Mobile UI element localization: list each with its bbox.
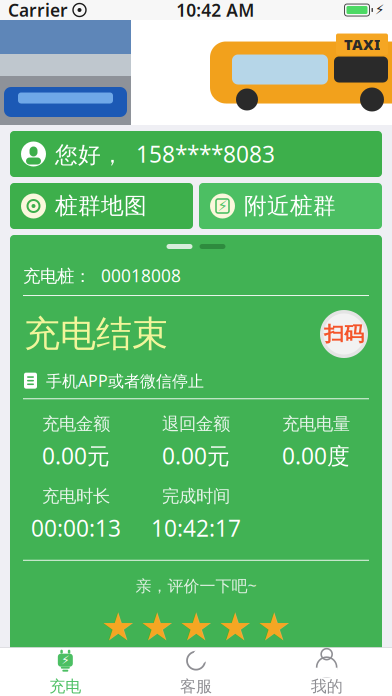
- staticText: ★: [139, 605, 174, 649]
- staticText: 桩群地图: [55, 192, 147, 220]
- staticText: 扫码: [324, 322, 364, 346]
- staticText: 充电金额: [42, 413, 110, 435]
- staticText: ⚡︎: [61, 653, 69, 667]
- staticText: 0.00度: [282, 441, 350, 471]
- staticText: 亲，评价一下吧~: [135, 575, 256, 596]
- staticText: 您好， 158****8083: [55, 139, 275, 169]
- button[interactable]: Rate: [139, 605, 174, 649]
- staticText: 00:00:13: [31, 513, 121, 543]
- button[interactable]: Rate: [100, 605, 135, 649]
- staticText: ★: [256, 605, 291, 649]
- button[interactable]: Rate: [217, 605, 252, 649]
- staticText: 0.00元: [42, 441, 110, 471]
- button[interactable]: 我的: [261, 648, 392, 696]
- staticText: ★: [178, 605, 213, 649]
- staticText: 充电结束: [24, 312, 168, 356]
- button[interactable]: 客服: [131, 648, 261, 696]
- staticText: 附近桩群: [244, 192, 336, 220]
- staticText: 我的: [311, 677, 343, 696]
- staticText: 手机APP或者微信停止: [46, 370, 204, 391]
- staticText: ⚡︎: [217, 198, 227, 214]
- button[interactable]: ⚡︎: [199, 183, 382, 229]
- button[interactable]: ⚡︎: [0, 648, 131, 696]
- staticText: 0.00元: [162, 441, 230, 471]
- button[interactable]: 桩群地图: [10, 183, 193, 229]
- button[interactable]: 您好， 158****8083: [10, 131, 382, 177]
- staticText: 客服: [180, 677, 212, 696]
- staticText: 充电桩： 00018008: [23, 264, 181, 287]
- staticText: 充电: [49, 677, 81, 696]
- staticText: 充电时长: [42, 485, 110, 507]
- button[interactable]: 扫码: [320, 310, 368, 358]
- staticText: 10:42 AM: [176, 0, 254, 21]
- staticText: ⚡︎: [375, 2, 384, 17]
- staticText: 退回金额: [162, 413, 230, 435]
- staticText: ★: [217, 605, 252, 649]
- button[interactable]: Rate: [256, 605, 291, 649]
- staticText: 10:42:17: [151, 513, 241, 543]
- staticText: 充电电量: [282, 413, 350, 435]
- staticText: Carrier: [8, 0, 68, 21]
- staticText: ★: [100, 605, 135, 649]
- staticText: 完成时间: [162, 485, 230, 507]
- button[interactable]: Rate: [178, 605, 213, 649]
- staticText: TAXI: [344, 34, 380, 54]
